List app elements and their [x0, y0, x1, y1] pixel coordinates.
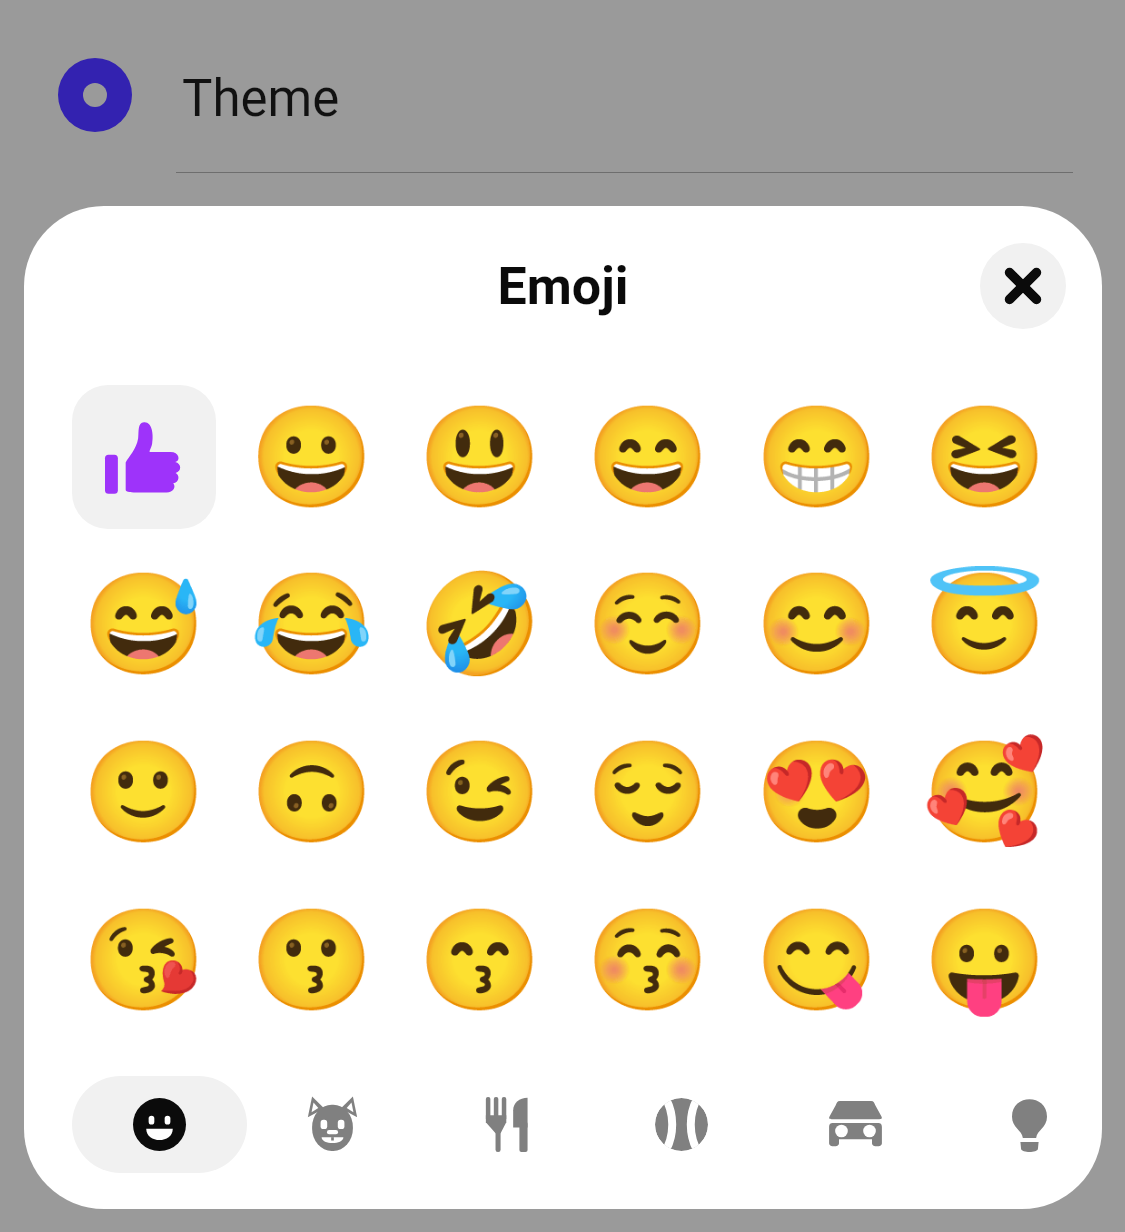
button[interactable]: Objects — [974, 1069, 1084, 1179]
button[interactable]: 😍 — [745, 720, 889, 864]
staticText: Theme — [182, 69, 340, 129]
button[interactable]: 🙃 — [240, 720, 384, 864]
button[interactable]: 😁 — [745, 385, 889, 529]
button[interactable]: Thumbs up — [72, 385, 216, 529]
button[interactable]: 😂 — [240, 552, 384, 696]
staticText: 😗 — [250, 902, 374, 1018]
staticText: 😚 — [586, 902, 710, 1018]
button[interactable]: ☺️ — [576, 552, 720, 696]
staticText: 😍 — [755, 734, 879, 850]
staticText: 😃 — [418, 399, 542, 515]
staticText: ☺️ — [586, 566, 710, 682]
button[interactable]: Activity — [626, 1069, 736, 1179]
button[interactable]: 😋 — [745, 888, 889, 1032]
button[interactable]: 😉 — [408, 720, 552, 864]
button[interactable]: 😙 — [408, 888, 552, 1032]
button[interactable]: 😊 — [745, 552, 889, 696]
staticText: 😛 — [923, 902, 1047, 1018]
staticText: 😆 — [923, 399, 1047, 515]
button[interactable]: 😌 — [576, 720, 720, 864]
button[interactable]: 😚 — [576, 888, 720, 1032]
staticText: 😊 — [755, 566, 879, 682]
button[interactable]: 😀 — [240, 385, 384, 529]
button[interactable]: 😗 — [240, 888, 384, 1032]
staticText: Emoji — [24, 256, 1102, 317]
button[interactable]: Food and drink — [451, 1069, 561, 1179]
staticText: 😂 — [250, 566, 374, 682]
button[interactable]: 😅 — [72, 552, 216, 696]
staticText: 😙 — [418, 902, 542, 1018]
button[interactable]: 🙂 — [72, 720, 216, 864]
staticText: 😀 — [250, 399, 374, 515]
staticText: 😅 — [82, 566, 206, 682]
staticText: 😄 — [586, 399, 710, 515]
button[interactable]: 😇 — [913, 552, 1057, 696]
staticText: 😇 — [923, 566, 1047, 682]
button[interactable]: 😃 — [408, 385, 552, 529]
button[interactable]: Close — [980, 243, 1066, 329]
staticText: 🥰 — [923, 734, 1047, 850]
staticText: 🤣 — [418, 566, 542, 682]
button[interactable]: Travel and places — [800, 1069, 910, 1179]
button[interactable]: Animals and nature — [277, 1069, 387, 1179]
staticText: 🙃 — [250, 734, 374, 850]
button[interactable]: 🤣 — [408, 552, 552, 696]
button[interactable]: 🥰 — [913, 720, 1057, 864]
staticText: 😌 — [586, 734, 710, 850]
button[interactable]: 😆 — [913, 385, 1057, 529]
button[interactable]: 😘 — [72, 888, 216, 1032]
staticText: 😉 — [418, 734, 542, 850]
button[interactable]: 😛 — [913, 888, 1057, 1032]
button[interactable]: 😄 — [576, 385, 720, 529]
staticText: 😁 — [755, 399, 879, 515]
staticText: 😋 — [755, 902, 879, 1018]
staticText: 😘 — [82, 902, 206, 1018]
button[interactable]: Smileys — [72, 1076, 247, 1173]
button[interactable]: Theme — [0, 20, 1125, 170]
staticText: 🙂 — [82, 734, 206, 850]
